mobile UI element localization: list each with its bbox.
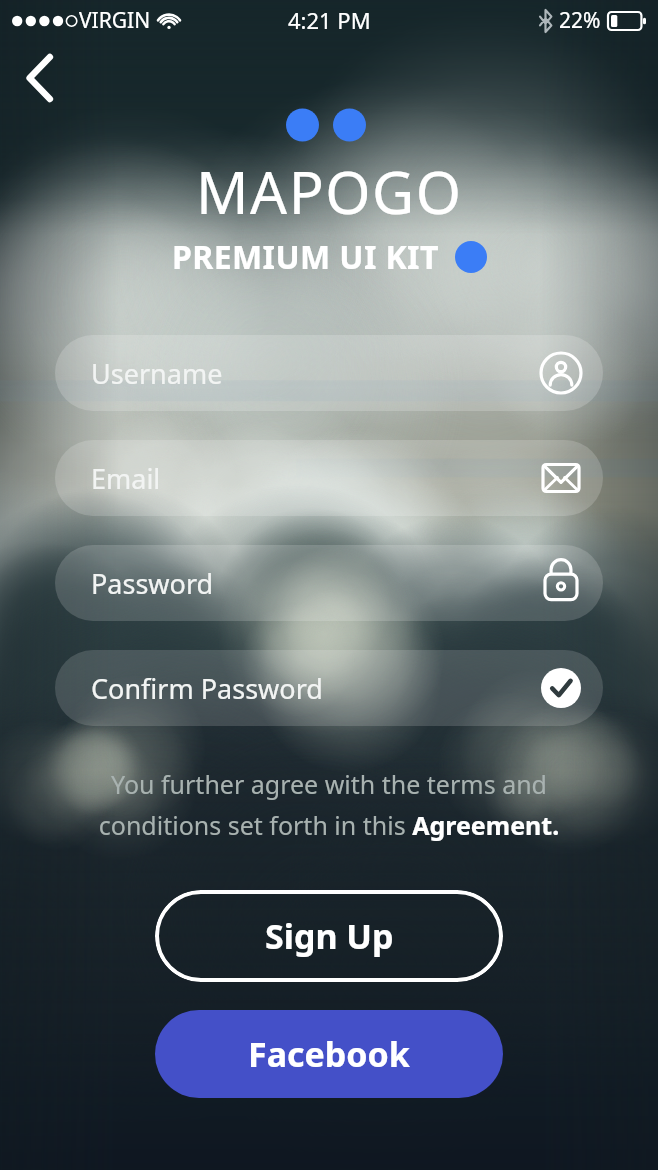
staticText: VIRGIN bbox=[79, 6, 151, 35]
staticText: Confirm Password bbox=[91, 670, 323, 707]
button[interactable]: Username bbox=[55, 335, 603, 411]
other: Username bbox=[537, 349, 585, 397]
other: Confirm Password bbox=[537, 664, 585, 712]
staticText: Password bbox=[91, 565, 214, 602]
staticText: Email bbox=[91, 460, 161, 497]
button[interactable]: Password bbox=[55, 545, 603, 621]
button[interactable]: Back bbox=[10, 48, 70, 108]
staticText: Sign Up bbox=[265, 913, 394, 959]
button[interactable]: Sign Up bbox=[155, 890, 503, 982]
staticText: You further agree with the terms and con… bbox=[52, 767, 606, 843]
staticText: Facebook bbox=[248, 1031, 410, 1077]
staticText: MAPOGO bbox=[196, 152, 463, 231]
button[interactable]: Email bbox=[55, 440, 603, 516]
staticText: Username bbox=[91, 355, 223, 392]
other: Password bbox=[537, 559, 585, 607]
button[interactable]: Confirm Password bbox=[55, 650, 603, 726]
staticText: 4:21 PM bbox=[288, 5, 371, 35]
staticText: 22% bbox=[559, 6, 601, 35]
button[interactable]: Facebook bbox=[155, 1010, 503, 1098]
staticText: PREMIUM UI KIT bbox=[172, 235, 439, 279]
other: Email bbox=[537, 454, 585, 502]
